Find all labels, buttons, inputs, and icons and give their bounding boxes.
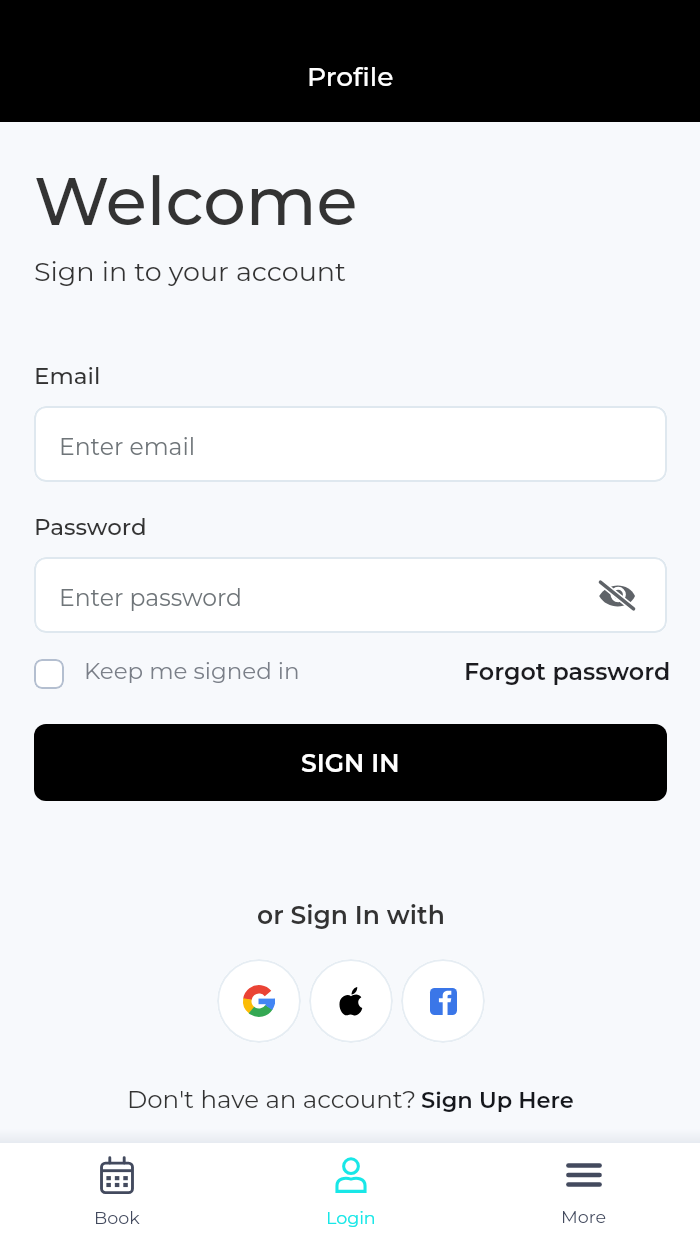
button[interactable]: Forgot password (464, 657, 671, 686)
button[interactable]: More (467, 1143, 700, 1244)
staticText: Book (94, 1207, 140, 1228)
button[interactable]: Show password (595, 573, 639, 617)
staticText: SIGN IN (301, 748, 400, 778)
button[interactable]: SIGN IN (34, 724, 667, 801)
staticText: Sign in to your account (34, 255, 347, 288)
button[interactable]: Sign in with Google (217, 959, 301, 1043)
button[interactable]: Sign in with Apple (309, 959, 393, 1043)
staticText: or Sign In with (257, 900, 445, 930)
staticText: Enter password (59, 583, 242, 612)
staticText: Don't have an account? (127, 1084, 417, 1114)
staticText: More (561, 1206, 607, 1227)
button[interactable]: Book (0, 1143, 234, 1244)
staticText: Password (34, 513, 147, 541)
button[interactable]: Keep me signed in (34, 656, 300, 686)
button[interactable]: Enter password (34, 557, 667, 633)
button[interactable]: Sign in with Facebook (401, 959, 485, 1043)
staticText: Keep me signed in (84, 657, 300, 685)
staticText: Enter email (59, 432, 196, 461)
staticText: Profile (307, 60, 394, 92)
staticText: Email (34, 362, 101, 390)
staticText: Login (326, 1207, 376, 1228)
staticText: Welcome (34, 160, 358, 242)
button[interactable]: Sign Up Here (421, 1086, 574, 1113)
button[interactable]: Enter email (34, 406, 667, 482)
button[interactable]: Login (234, 1143, 467, 1244)
